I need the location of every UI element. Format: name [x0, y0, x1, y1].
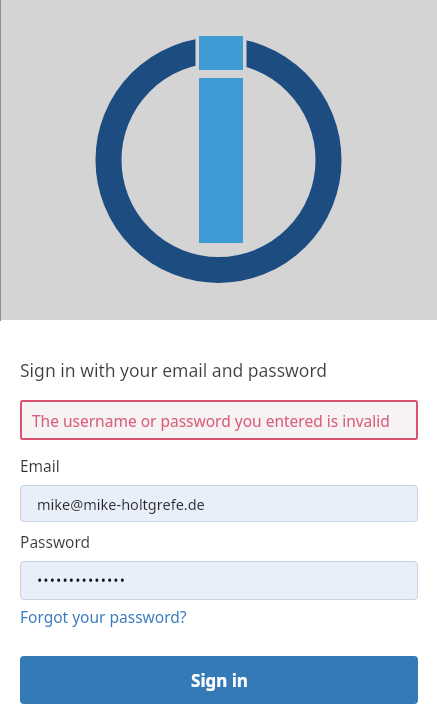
- staticText: Sign in: [191, 669, 248, 692]
- staticText: Password: [20, 531, 91, 552]
- staticText: Email: [20, 455, 60, 476]
- staticText: Forgot your password?: [20, 606, 187, 627]
- button[interactable]: The username or password you entered is …: [20, 400, 418, 440]
- staticText: Sign in with your email and password: [20, 358, 328, 382]
- button[interactable]: Sign in: [20, 656, 418, 704]
- button[interactable]: ••••••••••••••: [20, 561, 418, 600]
- staticText: The username or password you entered is …: [32, 410, 390, 431]
- button[interactable]: Forgot your password?: [20, 606, 187, 627]
- staticText: ••••••••••••••: [37, 571, 127, 590]
- button[interactable]: mike@mike-holtgrefe.de: [20, 485, 418, 522]
- staticText: mike@mike-holtgrefe.de: [37, 494, 205, 514]
